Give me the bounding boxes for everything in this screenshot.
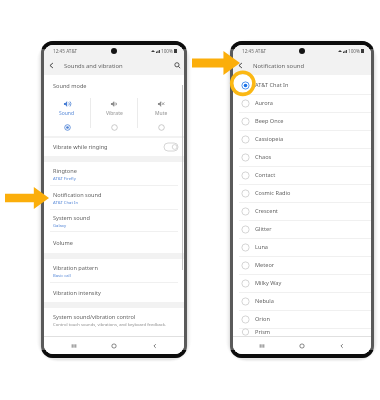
staticText: Basic call (53, 273, 71, 279)
button[interactable]: Beep Once (233, 112, 371, 130)
staticText: Cosmic Radio (255, 189, 291, 197)
staticText: Vibration pattern (53, 264, 98, 272)
staticText: Crescent (255, 207, 278, 215)
button[interactable]: Prism (233, 328, 371, 336)
button[interactable]: Search (170, 56, 184, 75)
button[interactable]: Cassiopeia (233, 130, 371, 148)
button[interactable]: Aurora (233, 94, 371, 112)
button[interactable]: Meteor (233, 256, 371, 274)
staticText: Ringtone (53, 167, 77, 175)
button[interactable]: Back (331, 337, 353, 354)
staticText: Galaxy (53, 223, 67, 229)
button[interactable]: Volume (44, 232, 184, 253)
staticText: Vibrate while ringing (53, 143, 108, 151)
staticText: Mute (155, 110, 168, 117)
button[interactable]: AT&T Chat In (233, 76, 371, 94)
staticText: Prism (255, 328, 271, 336)
staticText: 100% (161, 48, 173, 54)
staticText: Notification sound (53, 191, 102, 199)
staticText: Nebula (255, 297, 274, 305)
staticText: System sound/vibration control (53, 313, 136, 321)
button[interactable]: System sound/vibration control (44, 308, 184, 332)
staticText: AT&T Chat In (255, 81, 289, 89)
staticText: Orion (255, 315, 270, 323)
button[interactable]: Vibrate while ringing (44, 138, 184, 156)
staticText: Sound mode (53, 82, 87, 90)
staticText: Milky Way (255, 279, 282, 287)
button[interactable]: System sound (44, 210, 184, 232)
staticText: Cassiopeia (255, 135, 284, 143)
staticText: Glitter (255, 225, 272, 233)
staticText: Notification sound (253, 62, 305, 70)
staticText: System sound (53, 214, 90, 222)
button[interactable]: Chaos (233, 148, 371, 166)
button[interactable]: Recent apps (251, 337, 273, 354)
button[interactable]: Contact (233, 166, 371, 184)
staticText: Aurora (255, 99, 273, 107)
staticText: Luna (255, 243, 268, 251)
staticText: Control touch sounds, vibrations, and ke… (53, 322, 167, 328)
button[interactable]: Vibration intensity (44, 283, 184, 302)
button[interactable]: Mute (138, 90, 184, 136)
button[interactable]: Crescent (233, 202, 371, 220)
button[interactable]: Ringtone (44, 162, 184, 186)
button[interactable]: Notification sound (44, 186, 184, 210)
button[interactable]: Navigate up (233, 56, 247, 75)
button[interactable]: Glitter (233, 220, 371, 238)
staticText: Vibrate (106, 110, 123, 117)
button[interactable]: Orion (233, 310, 371, 328)
staticText: Contact (255, 171, 276, 179)
staticText: 12:45 AT&T (242, 48, 267, 54)
button[interactable]: Milky Way (233, 274, 371, 292)
button[interactable]: Nebula (233, 292, 371, 310)
staticText: Beep Once (255, 117, 284, 125)
button[interactable]: Home (103, 337, 125, 354)
staticText: AT&T Chat In (53, 200, 79, 206)
button[interactable]: Navigate up (44, 56, 58, 75)
button[interactable]: Vibrate (91, 90, 137, 136)
staticText: Sounds and vibration (64, 62, 123, 70)
staticText: Meteor (255, 261, 275, 269)
button[interactable]: Vibrate while ringing (164, 143, 178, 151)
button[interactable]: Back (144, 337, 166, 354)
button[interactable]: Home (291, 337, 313, 354)
button[interactable]: Vibration pattern (44, 259, 184, 283)
button[interactable]: Cosmic Radio (233, 184, 371, 202)
staticText: Chaos (255, 153, 272, 161)
button[interactable]: Recent apps (63, 337, 85, 354)
button[interactable]: Sound (44, 90, 90, 136)
staticText: Volume (53, 239, 73, 247)
staticText: Sound (59, 110, 75, 117)
staticText: AT&T Firefly (53, 176, 76, 182)
staticText: 100% (348, 48, 360, 54)
button[interactable]: Luna (233, 238, 371, 256)
staticText: Vibration intensity (53, 289, 101, 297)
staticText: 12:45 AT&T (53, 48, 78, 54)
